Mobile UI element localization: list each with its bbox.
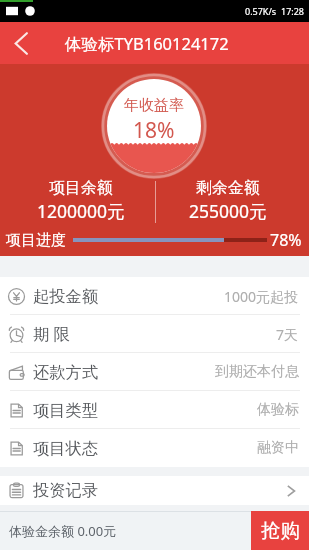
- staticText: 起投金额: [33, 286, 99, 307]
- button[interactable]: 抢购: [251, 511, 309, 550]
- staticText: 0.57K/s: [245, 5, 277, 17]
- button[interactable]: 还款方式: [0, 353, 309, 391]
- staticText: 78%: [270, 229, 302, 251]
- staticText: 项目状态: [33, 438, 99, 459]
- staticText: 融资中: [257, 439, 299, 457]
- staticText: 项目类型: [33, 400, 99, 421]
- staticText: 期 限: [33, 323, 70, 345]
- staticText: 项目进度: [6, 231, 66, 250]
- staticText: 投资记录: [33, 480, 99, 501]
- staticText: 到期还本付息: [215, 363, 299, 381]
- staticText: 还款方式: [33, 362, 99, 383]
- button[interactable]: 项目类型: [0, 391, 309, 429]
- staticText: 1200000元: [37, 199, 125, 223]
- staticText: 1000元起投: [224, 287, 299, 306]
- staticText: 18%: [133, 116, 175, 145]
- staticText: 体验标TYB160124172: [65, 32, 229, 55]
- button[interactable]: 期 限: [0, 315, 309, 353]
- button[interactable]: 起投金额: [0, 277, 309, 315]
- staticText: 体验金余额 0.00元: [9, 522, 117, 540]
- staticText: 抢购: [261, 518, 300, 543]
- staticText: 项目余额: [49, 178, 113, 198]
- button[interactable]: Back: [0, 22, 42, 64]
- staticText: 17:28: [281, 5, 305, 17]
- staticText: 255000元: [189, 199, 267, 223]
- staticText: 年收益率: [124, 96, 184, 115]
- button[interactable]: 项目状态: [0, 429, 309, 467]
- staticText: 剩余金额: [196, 178, 260, 198]
- staticText: 体验标: [257, 401, 299, 419]
- button[interactable]: 投资记录: [0, 476, 309, 505]
- staticText: 7天: [276, 325, 299, 344]
